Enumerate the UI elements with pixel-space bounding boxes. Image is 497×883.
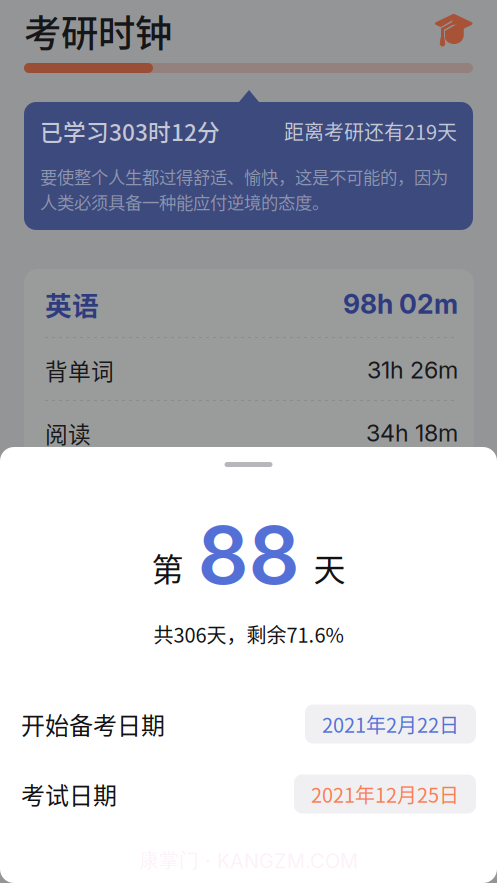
- staticText: 开始备考日期: [21, 707, 165, 741]
- staticText: 已学习303时12分: [40, 115, 220, 147]
- button[interactable]: 考试日期: [0, 759, 497, 829]
- staticText: 背单词: [45, 354, 114, 386]
- staticText: 共306天，剩余71.6%: [153, 619, 343, 648]
- staticText: 31h 26m: [367, 356, 458, 384]
- staticText: 考研时钟: [24, 4, 172, 58]
- staticText: 34h 18m: [366, 419, 458, 447]
- staticText: 2021年12月25日: [311, 779, 459, 808]
- button[interactable]: 开始备考日期: [0, 689, 497, 759]
- staticText: 第: [151, 544, 183, 590]
- staticText: 天: [313, 544, 345, 590]
- staticText: 距离考研还有219天: [284, 116, 457, 145]
- staticText: 康掌门 · KANGZM.COM: [139, 848, 358, 873]
- staticText: 阅读: [45, 417, 91, 449]
- staticText: 英语: [45, 285, 99, 323]
- staticText: 98h 02m: [343, 288, 458, 320]
- staticText: 考试日期: [21, 777, 117, 811]
- staticText: 要使整个人生都过得舒适、愉快，这是不可能的，因为人类必须具备一种能应付逆境的态度…: [40, 164, 448, 214]
- staticText: 88: [197, 507, 299, 603]
- staticText: 2021年2月22日: [322, 709, 459, 738]
